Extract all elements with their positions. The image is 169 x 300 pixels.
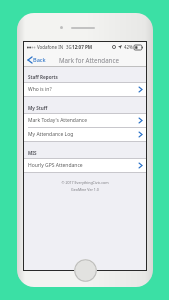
other: Open My Attendance Log <box>139 132 142 137</box>
staticText: Who is in? <box>28 86 52 93</box>
staticText: My Stuff <box>28 105 48 111</box>
other: Open Mark Today's Attendance <box>139 118 142 123</box>
staticText: My Attendance Log <box>28 131 74 138</box>
button[interactable]: My Attendance Log <box>24 128 146 141</box>
staticText: Mark Today's Attendance <box>28 117 88 124</box>
staticText: Staff Reports <box>28 74 58 80</box>
staticText: Vodafone IN <box>37 44 64 50</box>
staticText: Back <box>33 56 46 64</box>
staticText: 12:07 PM <box>72 44 93 50</box>
other: Open Who is in? <box>139 87 142 92</box>
staticText: 3G <box>66 44 72 50</box>
staticText: Mark for Attendance <box>59 56 119 64</box>
button[interactable]: Who is in? <box>24 83 146 96</box>
button[interactable]: Back <box>26 54 48 66</box>
other: Open Hourly GPS Attendance <box>139 163 142 168</box>
staticText: Hourly GPS Attendance <box>28 162 83 169</box>
staticText: GeoMine Ver 1.0 <box>71 187 99 192</box>
button[interactable]: Mark Today's Attendance <box>24 114 146 127</box>
staticText: MIS <box>28 150 37 156</box>
staticText: © 2017 EverythingCivic.com <box>61 180 109 185</box>
staticText: 42% <box>124 44 133 50</box>
button[interactable]: Hourly GPS Attendance <box>24 159 146 172</box>
